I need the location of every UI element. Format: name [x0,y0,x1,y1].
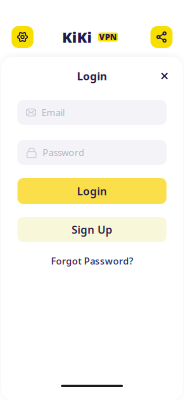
staticText: Forgot Password? [51,255,133,267]
staticText: Email [41,106,64,119]
button[interactable]: Forgot Password? [51,255,133,267]
staticText: KiKi [62,27,92,47]
button[interactable]: Close [156,68,172,84]
button[interactable]: Settings [11,26,33,48]
button[interactable]: Share [150,26,172,48]
staticText: Password [42,146,84,159]
staticText: Sign Up [71,222,112,237]
staticText: Login [77,184,107,198]
staticText: VPN [99,32,117,42]
staticText: Login [77,69,107,83]
button[interactable]: Sign Up [17,217,166,242]
button[interactable]: Login [17,178,166,204]
